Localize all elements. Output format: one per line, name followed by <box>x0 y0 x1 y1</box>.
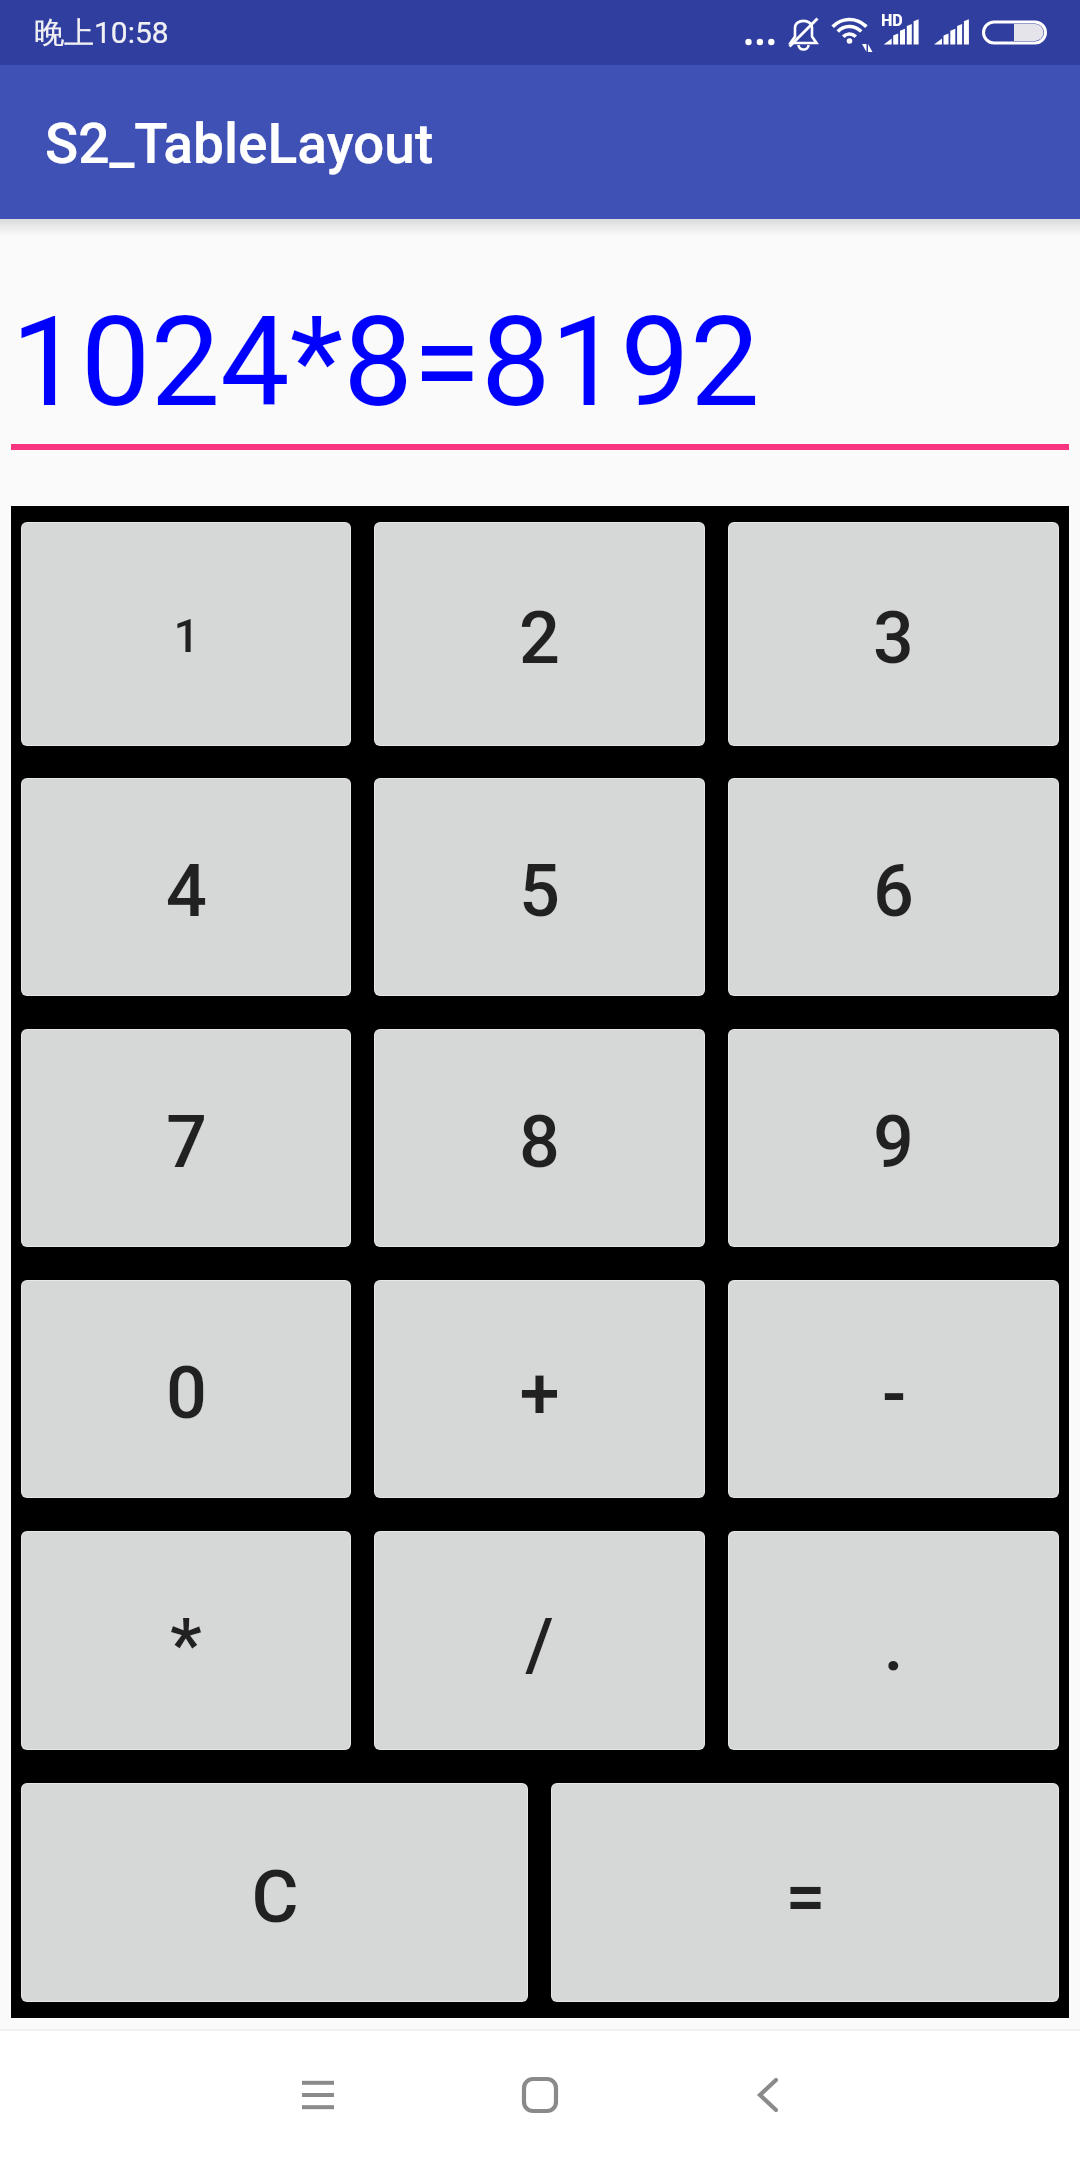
button[interactable]: 0 <box>22 1281 350 1497</box>
button[interactable]: + <box>375 1281 704 1497</box>
staticText: / <box>525 1603 554 1687</box>
staticText: 6 <box>873 849 914 933</box>
staticText: HD <box>881 11 903 30</box>
staticText: . <box>883 1603 904 1687</box>
staticText: 0 <box>166 1351 207 1435</box>
staticText: 8 <box>519 1100 560 1184</box>
button[interactable]: 1 <box>22 523 350 745</box>
button[interactable]: . <box>729 1532 1058 1749</box>
button[interactable]: - <box>729 1281 1058 1497</box>
staticText: C <box>251 1855 299 1939</box>
button[interactable]: 7 <box>22 1030 350 1246</box>
button[interactable]: Back <box>708 2035 828 2155</box>
button[interactable]: 4 <box>22 779 350 995</box>
button[interactable]: 5 <box>375 779 704 995</box>
button[interactable]: C <box>22 1784 527 2001</box>
staticText: 1024*8=8192 <box>11 290 760 435</box>
staticText: * <box>170 1603 202 1687</box>
button[interactable]: 6 <box>729 779 1058 995</box>
staticText: 7 <box>166 1100 207 1184</box>
button[interactable]: Home <box>480 2035 600 2155</box>
staticText: 5 <box>519 849 560 933</box>
staticText: 4 <box>166 849 207 933</box>
staticText: 3 <box>873 596 914 680</box>
staticText: = <box>785 1855 826 1939</box>
staticText: S2_TableLayout <box>45 112 434 176</box>
staticText: 2 <box>519 596 560 680</box>
button[interactable]: / <box>375 1532 704 1749</box>
button[interactable]: 9 <box>729 1030 1058 1246</box>
button[interactable]: 3 <box>729 523 1058 745</box>
staticText: 9 <box>873 1100 914 1184</box>
button[interactable]: = <box>552 1784 1058 2001</box>
button[interactable]: Recent apps <box>258 2035 378 2155</box>
staticText: - <box>882 1351 906 1435</box>
button[interactable]: 8 <box>375 1030 704 1246</box>
button[interactable]: * <box>22 1532 350 1749</box>
staticText: + <box>519 1351 560 1435</box>
staticText: 晚上10:58 <box>34 14 169 52</box>
button[interactable]: 2 <box>375 523 704 745</box>
staticText: 1 <box>173 609 200 663</box>
